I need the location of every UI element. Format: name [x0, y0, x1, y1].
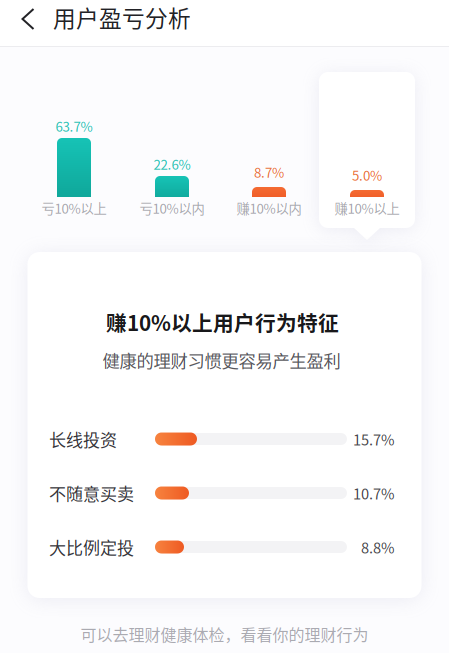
staticText: 可以去理财健康体检，看看你的理财行为 [80, 622, 368, 646]
staticText: 健康的理财习惯更容易产生盈利 [102, 347, 340, 373]
staticText: 亏10%以上 [41, 198, 106, 218]
staticText: 8.8% [361, 536, 395, 558]
staticText: 15.7% [353, 428, 395, 450]
staticText: 大比例定投 [49, 535, 134, 559]
staticText: 8.7% [254, 162, 284, 182]
staticText: 长线投资 [49, 427, 117, 451]
staticText: 10.7% [353, 482, 395, 504]
staticText: 不随意买卖 [49, 481, 134, 505]
staticText: 赚10%以上用户行为特征 [106, 307, 339, 337]
staticText: 亏10%以内 [139, 198, 204, 218]
staticText: 63.7% [55, 116, 92, 136]
staticText: 用户盈亏分析 [53, 1, 191, 33]
button[interactable]: 返回 [6, 0, 50, 42]
staticText: 赚10%以内 [236, 198, 301, 218]
staticText: 5.0% [352, 165, 382, 185]
staticText: 赚10%以上 [334, 198, 399, 218]
staticText: 22.6% [153, 154, 190, 174]
